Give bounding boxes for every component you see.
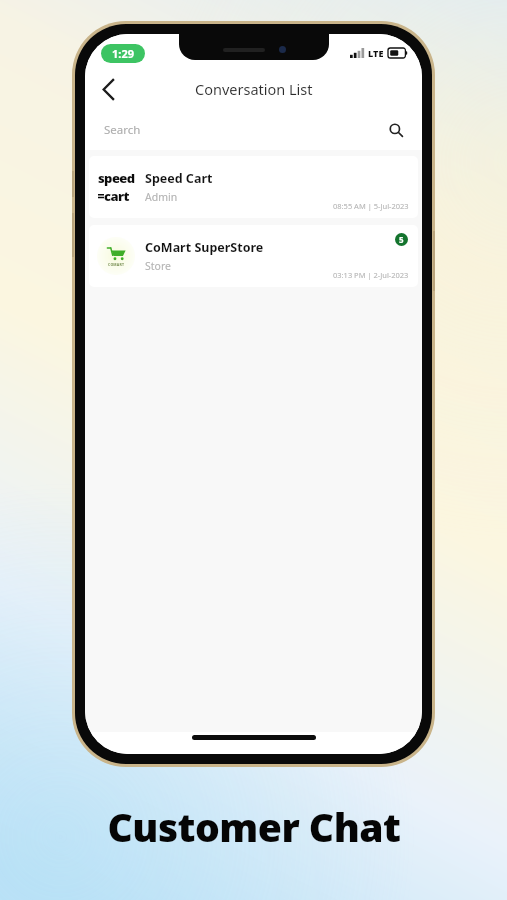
staticText: Speed Cart (145, 170, 213, 187)
staticText: COMART (108, 262, 125, 267)
other: Search (386, 120, 406, 140)
staticText: cart (104, 187, 129, 205)
staticText: Conversation List (195, 79, 313, 99)
staticText: 03:13 PM | 2-Jul-2023 (333, 270, 409, 280)
button[interactable]: Search (85, 110, 422, 150)
staticText: LTE (368, 47, 384, 59)
staticText: CoMart SuperStore (145, 239, 264, 256)
button[interactable]: COMART (89, 225, 418, 287)
staticText: Customer Chat (107, 800, 401, 853)
staticText: 08:55 AM | 5-Jul-2023 (333, 201, 409, 211)
button[interactable]: Back (85, 68, 131, 110)
staticText: Search (104, 122, 141, 138)
staticText: 1:29 (112, 46, 134, 61)
staticText: Admin (145, 190, 178, 204)
button[interactable]: speed (89, 156, 418, 218)
staticText: Store (145, 259, 171, 273)
staticText: 5 (399, 234, 404, 245)
staticText: speed (98, 169, 135, 187)
